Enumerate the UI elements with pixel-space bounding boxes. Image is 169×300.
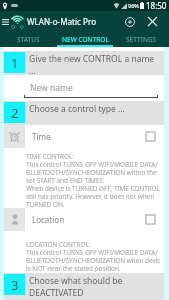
staticText: LOCATION CONTROL:: [26, 240, 91, 248]
staticText: New name: [30, 82, 73, 94]
staticText: Give the new CONTROL a name: [29, 53, 155, 65]
staticText: 96%: [128, 2, 139, 9]
button[interactable]: NEW CONTROL: [57, 32, 113, 47]
staticText: Time: [32, 131, 51, 142]
button[interactable]: SETTINGS: [113, 32, 169, 47]
button[interactable]: Location: [4, 208, 164, 231]
staticText: Choose what should be: [29, 275, 123, 287]
staticText: WLAN-o-Matic Pro: [27, 16, 97, 27]
staticText: STATUS: [17, 35, 40, 44]
staticText: SETTINGS: [126, 35, 157, 44]
staticText: Location: [32, 214, 65, 225]
staticText: 2: [11, 104, 19, 122]
staticText: TURNED ON.: [26, 200, 65, 208]
staticText: Choose a control type ...: [29, 103, 125, 115]
staticText: set START and END TIMES.: [26, 176, 105, 184]
staticText: 18:50: [146, 0, 167, 11]
staticText: 3: [11, 276, 19, 294]
staticText: This control TURNS OFF WIFI/MOBILE DATA/: [26, 248, 158, 256]
staticText: DEACTIVATED: [29, 287, 84, 299]
staticText: This control TURNS OFF WIFI/MOBILE DATA/: [26, 160, 158, 168]
staticText: 1: [11, 54, 19, 72]
button[interactable]: STATUS: [0, 32, 57, 47]
button[interactable]: Close: [140, 11, 165, 32]
staticText: ...: [29, 65, 36, 75]
staticText: BLUETOOTH/SYNCHRONIZATION within the: [26, 168, 157, 176]
staticText: When device is TURNED OFF, TIME CONTROL: [26, 184, 160, 192]
button[interactable]: Add new control: [120, 11, 140, 32]
staticText: TIME CONTROL:: [26, 152, 75, 160]
button[interactable]: Open navigation drawer: [0, 11, 11, 32]
staticText: is NOT near the stated position.: [26, 264, 121, 272]
staticText: BLUETOOTH/SYNCHRONIZATION when device: [26, 256, 160, 264]
staticText: NEW CONTROL: [62, 35, 109, 44]
button[interactable]: Time: [4, 125, 164, 148]
staticText: still has priority. However, it does not…: [26, 192, 155, 200]
